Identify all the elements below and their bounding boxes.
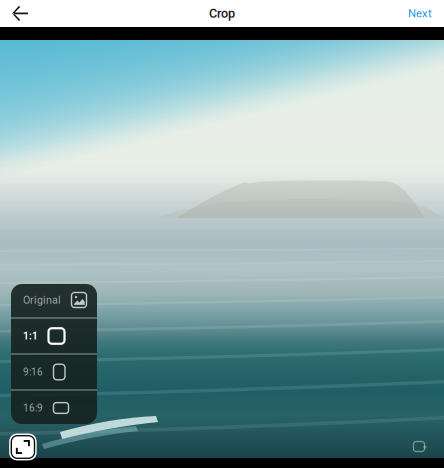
button[interactable]: 16:9 xyxy=(11,390,97,425)
staticText: 1:1 xyxy=(23,330,38,342)
button[interactable]: Original xyxy=(11,282,97,317)
button[interactable]: Back xyxy=(0,0,40,27)
button[interactable]: 9:16 xyxy=(11,354,97,389)
button[interactable]: Next xyxy=(408,0,444,27)
button[interactable]: 1:1 xyxy=(11,318,97,353)
button[interactable]: Free crop xyxy=(10,434,36,460)
staticText: Original xyxy=(23,294,61,306)
staticText: 9:16 xyxy=(23,366,43,378)
button[interactable]: Add xyxy=(413,441,428,452)
staticText: Crop xyxy=(209,6,235,21)
staticText: 16:9 xyxy=(23,402,43,414)
staticText: Next xyxy=(408,7,432,20)
